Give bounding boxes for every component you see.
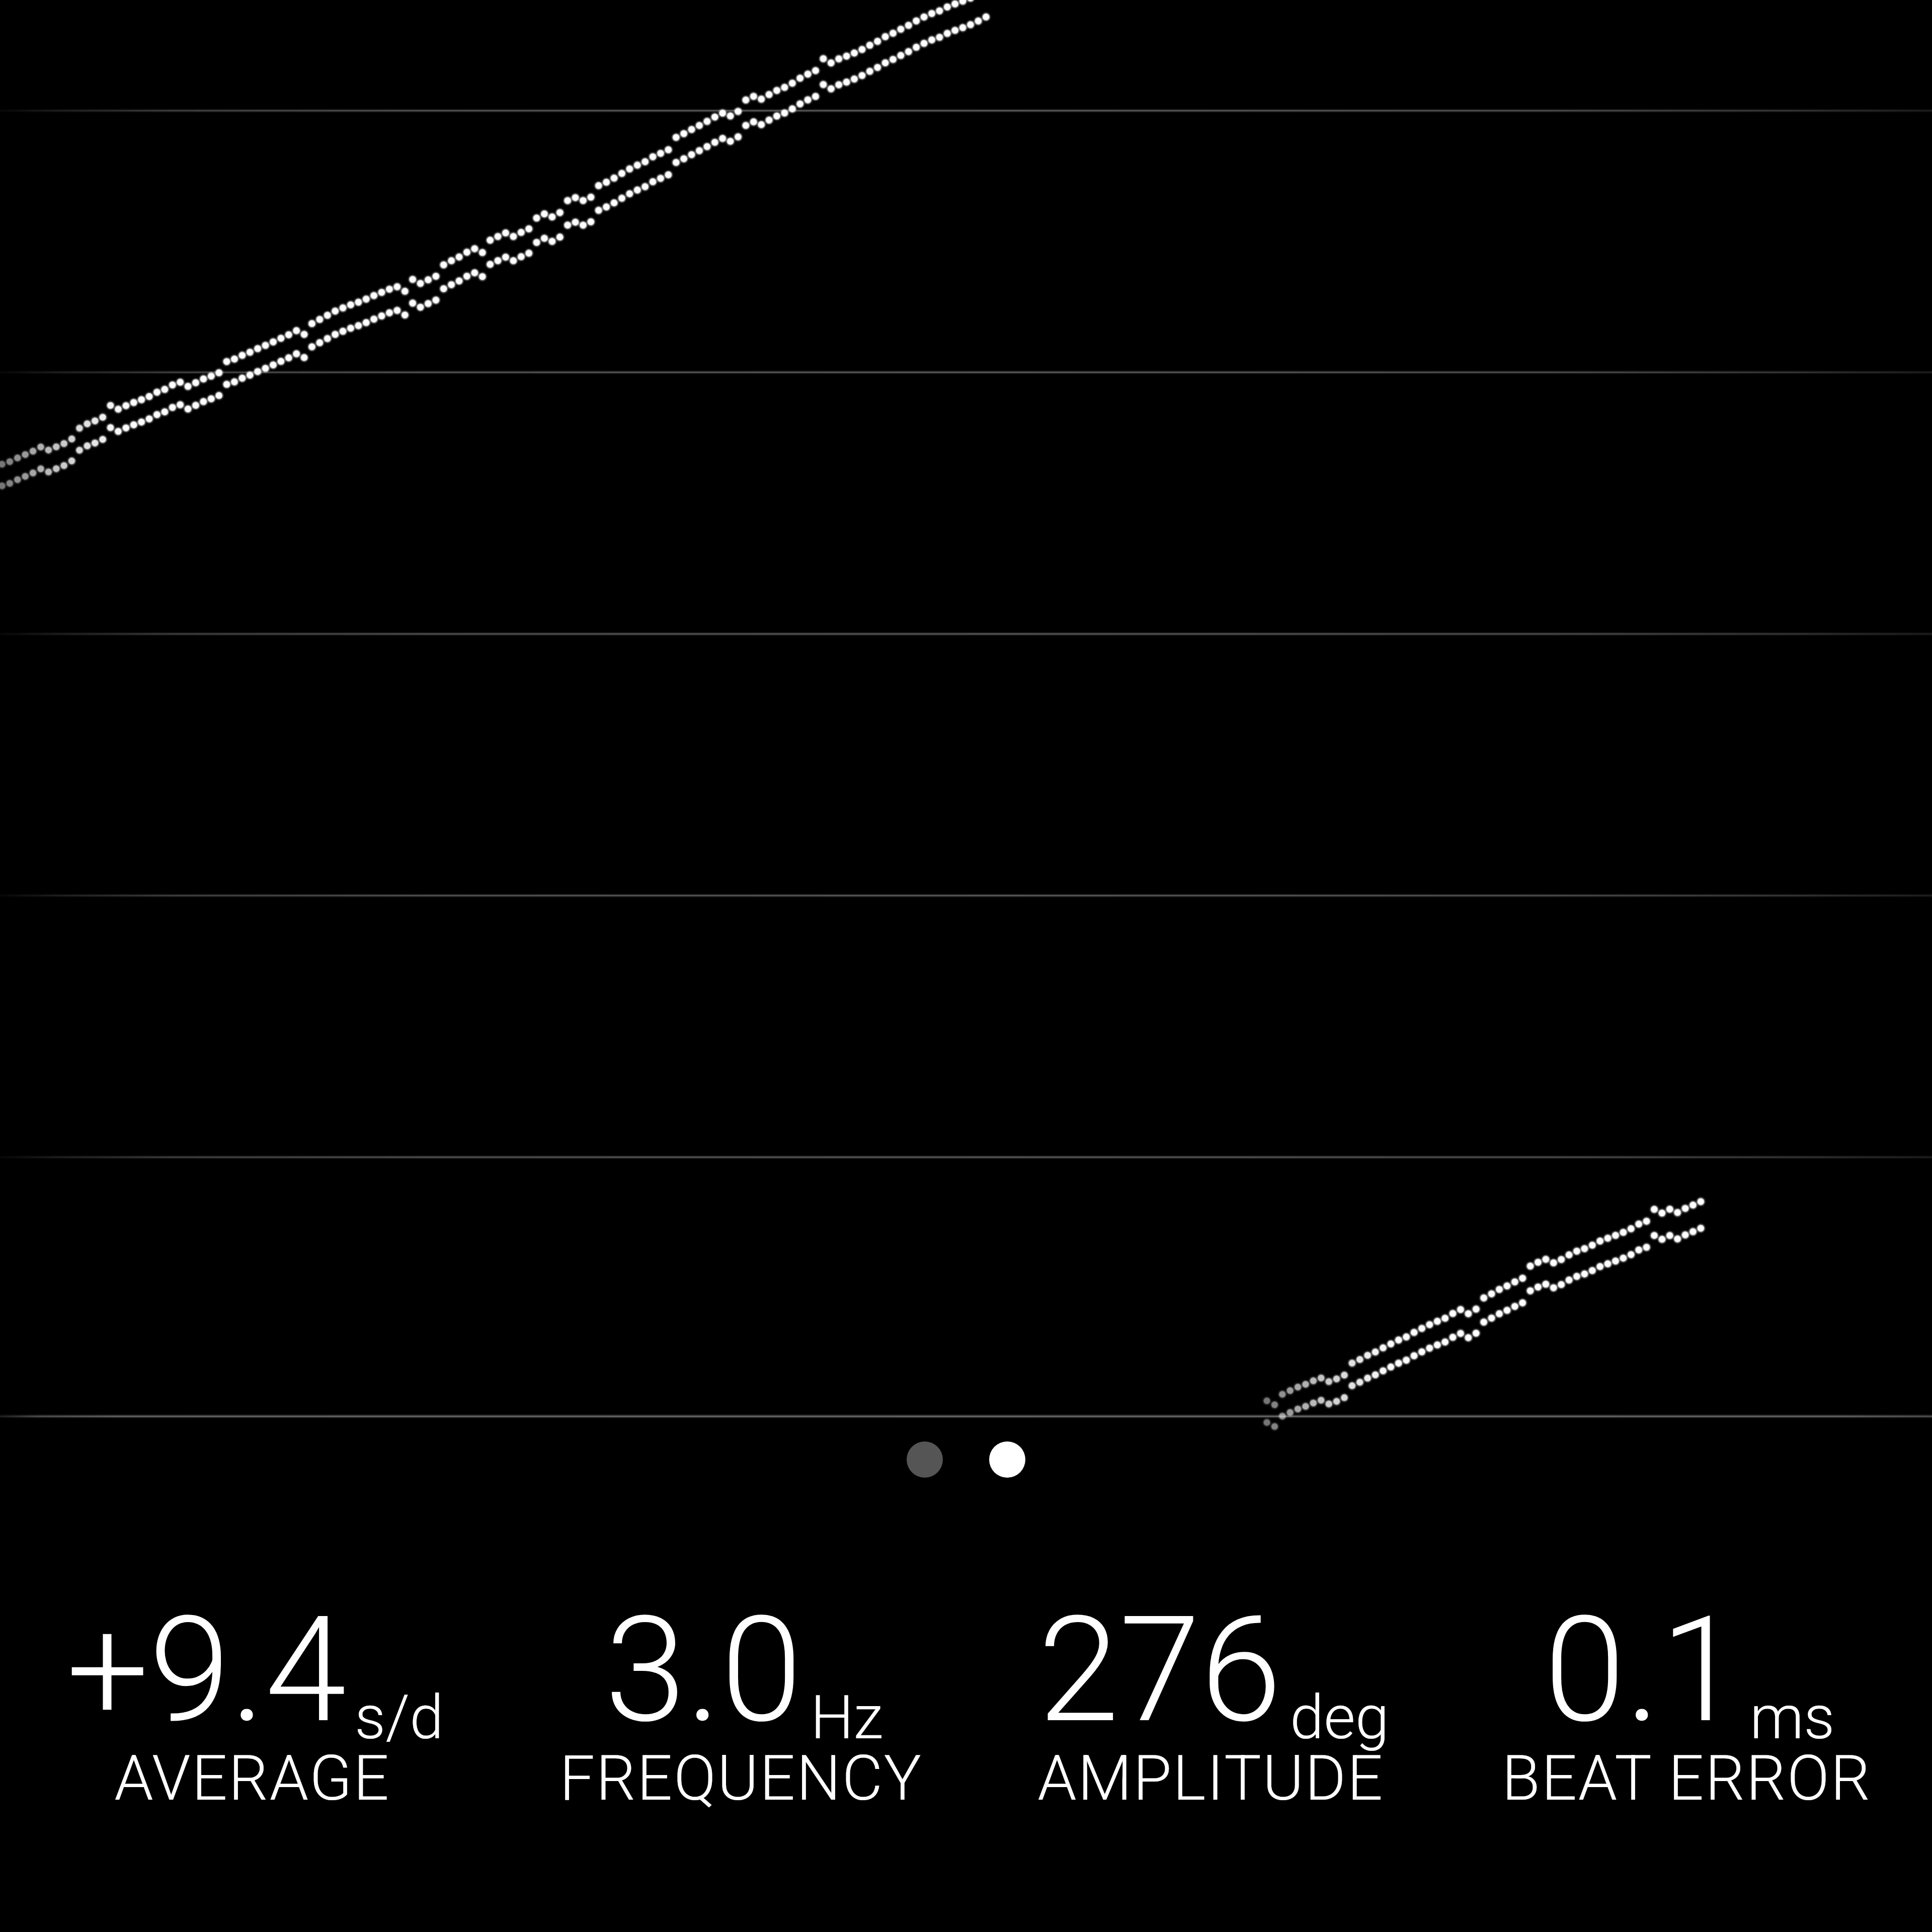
button[interactable]: +9.4	[11, 1570, 494, 1852]
staticText: AVERAGE	[114, 1742, 390, 1815]
button[interactable]: 276	[969, 1570, 1452, 1852]
staticText: s/d	[355, 1682, 444, 1753]
button[interactable]: 0.1	[1445, 1570, 1928, 1852]
button[interactable]: 3.0	[500, 1570, 983, 1852]
staticText: AMPLITUDE	[1037, 1742, 1384, 1815]
staticText: deg	[1290, 1682, 1389, 1753]
staticText: 0.1	[1544, 1584, 1742, 1756]
staticText: ms	[1750, 1682, 1835, 1753]
staticText: +9.4	[66, 1584, 347, 1756]
button[interactable]: Page 2, selected	[989, 1441, 1025, 1478]
staticText: Hz	[811, 1682, 883, 1753]
button[interactable]: Page 1	[907, 1441, 943, 1478]
staticText: FREQUENCY	[559, 1742, 923, 1815]
staticText: 276	[1038, 1584, 1282, 1756]
staticText: BEAT ERROR	[1502, 1742, 1872, 1815]
staticText: 3.0	[605, 1584, 802, 1756]
